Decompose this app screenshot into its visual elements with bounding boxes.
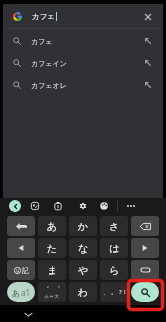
button[interactable]: Undo [7,216,35,236]
button[interactable]: ら [100,260,128,280]
button[interactable]: Emoji and symbols [7,260,35,280]
button[interactable]: カフェイン [3,52,163,74]
button[interactable]: た [38,238,66,258]
staticText: ゛ [43,285,50,293]
button[interactable]: あ [38,216,66,236]
button[interactable]: Insert カフェ [141,34,155,48]
staticText: た [47,242,58,255]
button[interactable]: ま [38,260,66,280]
staticText: さ [109,220,120,233]
staticText: あ [12,288,21,298]
button[interactable]: Switch input mode [7,282,35,302]
button[interactable]: な [69,238,97,258]
button[interactable]: Insert カフェオレ [141,78,155,92]
button[interactable]: カフェ [3,30,163,52]
button[interactable]: や [69,260,97,280]
button[interactable]: Cursor left [7,238,35,258]
button[interactable]: Hide keyboard [20,306,36,322]
button[interactable]: Themes [97,199,110,212]
staticText: 。 [111,288,117,296]
staticText: 、 [103,288,109,296]
staticText: 小 ⇔ 大 [44,293,60,299]
staticText: ? [119,288,122,296]
staticText: あ [47,220,58,233]
button[interactable]: Small kana [38,282,66,302]
staticText: カフェ [32,12,56,21]
staticText: 記 [22,266,29,275]
button[interactable]: か [69,216,97,236]
button[interactable]: カフェオレ [3,74,163,96]
staticText: カフェイン [31,59,67,68]
staticText: カフェオレ [31,81,67,90]
staticText: カフェ [31,37,53,46]
staticText: か [78,220,89,233]
button[interactable]: さ [100,216,128,236]
staticText: a1 [21,287,31,298]
staticText: ゜ [54,285,61,293]
button[interactable]: More options [124,199,137,212]
button[interactable]: Punctuation [100,282,128,302]
button[interactable]: Stickers [28,199,41,212]
button[interactable]: は [100,238,128,258]
staticText: は [109,242,120,255]
staticText: わ [78,286,89,299]
staticText: ま [47,264,58,277]
button[interactable]: Insert カフェイン [141,56,155,70]
button[interactable]: Search [131,282,159,302]
staticText: ら [109,264,120,277]
button[interactable]: Clipboard [51,199,64,212]
button[interactable]: わ [69,282,97,302]
button[interactable]: Delete [131,216,159,236]
button[interactable]: Cursor right [131,238,159,258]
button[interactable]: Close toolbar [9,200,21,212]
staticText: な [78,242,89,255]
button[interactable]: Settings [76,199,89,212]
staticText: や [78,264,89,277]
button[interactable]: Space [131,260,159,280]
button[interactable]: カフェ [3,4,163,29]
button[interactable]: Clear search [139,8,157,26]
staticText: ! [124,288,126,296]
